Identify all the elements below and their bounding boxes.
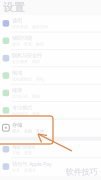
button[interactable]: 专注模式 bbox=[0, 102, 101, 119]
staticText: 隐私与安全性 bbox=[12, 52, 42, 59]
staticText: 活动记录、睡眠 bbox=[12, 94, 40, 99]
staticText: 软件技巧 bbox=[65, 167, 97, 177]
staticText: 软件更新、储存空间 bbox=[12, 24, 48, 29]
staticText: 存储 bbox=[12, 122, 22, 128]
staticText: 电池 bbox=[12, 70, 22, 76]
staticText: 定位服务、跟踪 bbox=[12, 59, 40, 64]
button[interactable]: 辅助功能 bbox=[0, 32, 101, 50]
button[interactable]: 钱包与 Apple Pay bbox=[0, 158, 101, 176]
button[interactable]: 存储 bbox=[0, 119, 101, 137]
staticText: 卡片、交通卡 bbox=[12, 168, 36, 173]
staticText: 勿扰模式、驾驶 bbox=[12, 111, 40, 116]
staticText: 专注模式 bbox=[12, 104, 32, 111]
staticText: 下载、更新 bbox=[12, 150, 32, 155]
button[interactable]: 健康 bbox=[0, 85, 101, 102]
staticText: 低电量模式、用电 bbox=[12, 77, 44, 81]
staticText: 显示、听觉、触控 bbox=[12, 42, 44, 47]
button[interactable]: 电池 bbox=[0, 67, 101, 85]
staticText: 辅助功能 bbox=[12, 35, 32, 41]
staticText: 健康 bbox=[12, 87, 22, 94]
button[interactable]: 隐私与安全性 bbox=[0, 50, 101, 67]
staticText: 钱包与 Apple Pay bbox=[12, 160, 52, 167]
button[interactable]: 通用 bbox=[0, 15, 101, 32]
staticText: App Store bbox=[12, 143, 35, 150]
button[interactable]: App Store bbox=[0, 141, 101, 158]
staticText: 通用 bbox=[12, 17, 22, 24]
staticText: 设置 bbox=[3, 1, 25, 14]
staticText: 照片、文稿、其他 bbox=[12, 129, 44, 134]
